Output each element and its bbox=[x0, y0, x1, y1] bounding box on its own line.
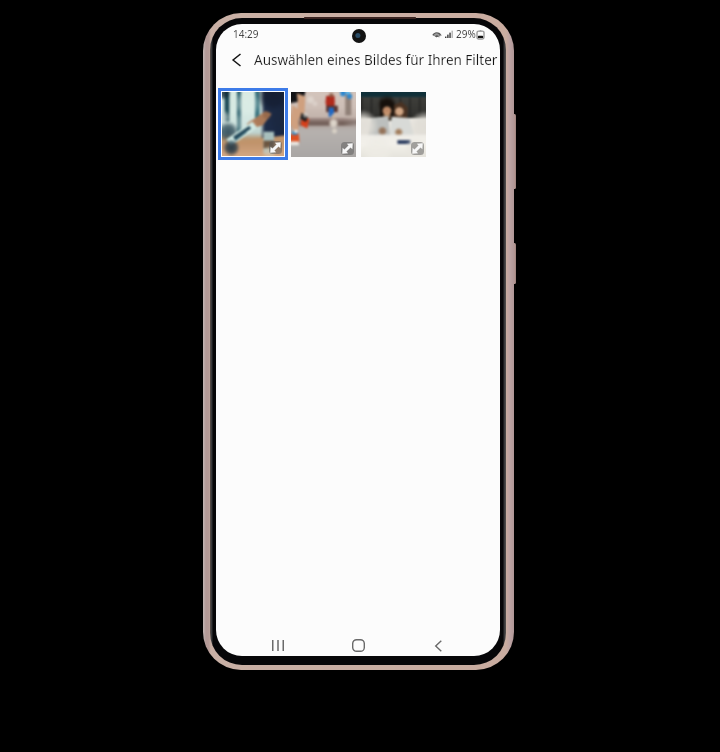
button[interactable]: Bild 2 bbox=[291, 92, 356, 157]
button[interactable]: Startbildschirm bbox=[338, 635, 378, 656]
staticText: 29% bbox=[456, 27, 476, 41]
button[interactable]: Bild 3 bbox=[361, 92, 426, 157]
staticText: Auswählen eines Bildes für Ihren Filter bbox=[254, 51, 498, 69]
button[interactable]: Zurück bbox=[225, 47, 248, 73]
staticText: 14:29 bbox=[233, 27, 259, 41]
button[interactable]: Bild 1 ausgewählt bbox=[218, 88, 288, 160]
button[interactable]: Letzte Apps bbox=[258, 635, 298, 656]
button[interactable]: Zurück bbox=[418, 635, 458, 656]
